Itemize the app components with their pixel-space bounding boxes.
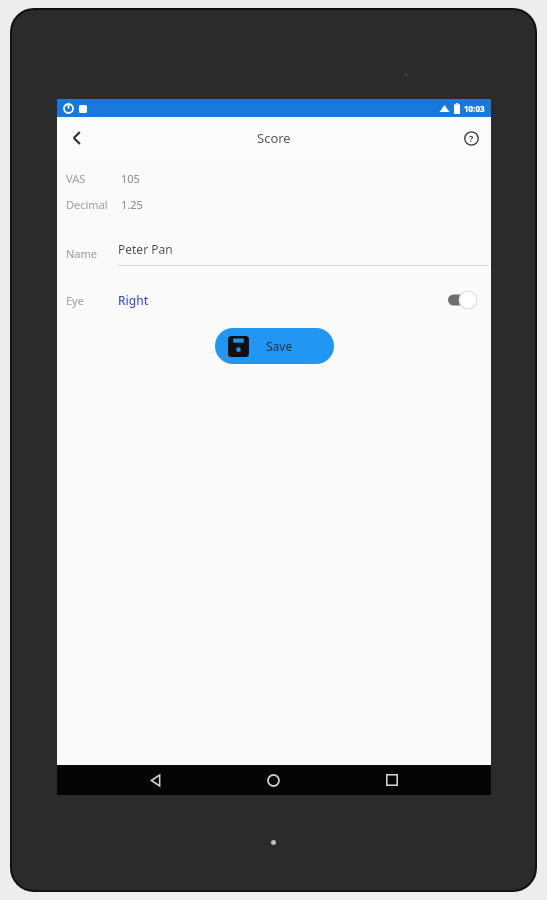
staticText: Eye: [66, 293, 84, 308]
button[interactable]: Back: [57, 118, 97, 158]
staticText: Save: [266, 338, 293, 354]
staticText: Right: [118, 292, 149, 308]
staticText: Score: [257, 129, 291, 147]
staticText: 10:03: [464, 103, 485, 114]
button[interactable]: Recent apps: [372, 765, 412, 795]
staticText: ?: [469, 132, 474, 144]
staticText: 1.25: [121, 197, 143, 212]
button[interactable]: Toggle eye: [441, 287, 481, 313]
button[interactable]: Help: [451, 118, 491, 158]
staticText: VAS: [66, 171, 86, 186]
button[interactable]: Back: [135, 765, 175, 795]
staticText: 105: [121, 171, 140, 186]
button[interactable]: Name: [57, 237, 491, 269]
staticText: Name: [66, 246, 98, 261]
staticText: Decimal: [66, 197, 108, 212]
staticText: Peter Pan: [118, 241, 173, 257]
button[interactable]: Home: [253, 765, 293, 795]
button[interactable]: Save: [215, 328, 334, 364]
